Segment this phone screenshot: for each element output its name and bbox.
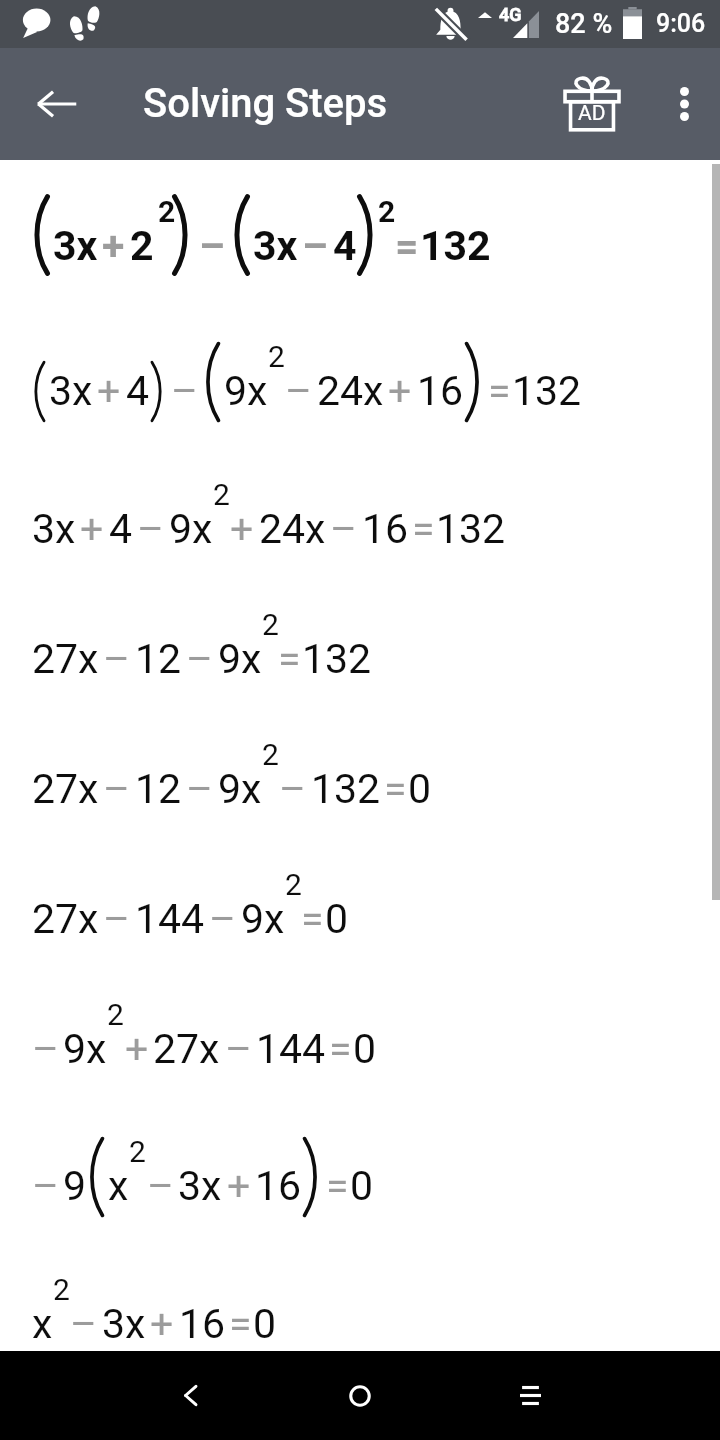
staticText: + <box>125 1025 149 1073</box>
staticText: = <box>412 505 435 553</box>
staticText: 4 <box>109 505 133 553</box>
staticText: – <box>186 635 213 683</box>
staticText: = <box>229 1300 252 1348</box>
staticText: + <box>80 505 104 553</box>
staticText: 132 <box>420 222 491 270</box>
staticText: x <box>108 1162 129 1210</box>
staticText: 16 <box>179 1300 226 1348</box>
staticText: = <box>488 367 511 415</box>
staticText: 16 <box>417 367 464 415</box>
staticText: – <box>199 222 225 270</box>
staticText: – <box>147 1162 174 1210</box>
staticText: + <box>230 505 254 553</box>
staticText: 2 <box>268 339 285 374</box>
staticText: – <box>32 1025 59 1073</box>
staticText: = <box>301 895 324 943</box>
staticText: + <box>97 367 121 415</box>
staticText: 2 <box>262 737 279 772</box>
staticText: – <box>171 367 198 415</box>
staticText: 9:06 <box>656 9 706 38</box>
staticText: 132 <box>302 635 372 683</box>
staticText: 144 <box>135 895 205 943</box>
staticText: 2 <box>378 194 396 229</box>
button[interactable]: Navigate up <box>0 48 112 160</box>
staticText: 4G <box>499 4 522 25</box>
staticText: = <box>278 635 301 683</box>
staticText: 4 <box>333 222 357 270</box>
staticText: – <box>137 505 164 553</box>
staticText: = <box>329 1025 352 1073</box>
staticText: 9x <box>241 895 285 943</box>
staticText: 144 <box>256 1025 326 1073</box>
staticText: 82 % <box>555 8 613 40</box>
staticText: 9x <box>169 505 213 553</box>
staticText: – <box>32 1162 59 1210</box>
staticText: 24x <box>259 505 326 553</box>
staticText: Solving Steps <box>143 80 388 127</box>
staticText: 3x <box>32 505 76 553</box>
staticText: 12 <box>135 765 182 813</box>
staticText: = <box>395 222 419 270</box>
staticText: – <box>186 765 213 813</box>
button[interactable]: Solving Steps <box>112 48 532 160</box>
staticText: 2 <box>262 607 279 642</box>
staticText: 0 <box>325 895 349 943</box>
staticText: AD <box>578 101 606 126</box>
staticText: – <box>103 765 130 813</box>
button[interactable]: Recent apps <box>470 1351 590 1440</box>
staticText: 9x <box>218 765 262 813</box>
staticText: 2 <box>130 222 154 270</box>
staticText: 2 <box>158 194 176 229</box>
staticText: 0 <box>408 765 432 813</box>
staticText: – <box>225 1025 252 1073</box>
staticText: 2 <box>213 477 230 512</box>
staticText: – <box>302 222 328 270</box>
staticText: – <box>279 765 306 813</box>
staticText: x <box>32 1300 53 1348</box>
staticText: – <box>70 1300 97 1348</box>
staticText: 9 <box>63 1162 87 1210</box>
staticText: – <box>103 635 130 683</box>
button[interactable]: Watch ad for reward <box>536 48 648 160</box>
staticText: – <box>209 895 236 943</box>
button[interactable]: More options <box>648 48 720 160</box>
staticText: 27x <box>153 1025 220 1073</box>
staticText: 27x <box>32 895 99 943</box>
staticText: + <box>150 1300 174 1348</box>
staticText: 132 <box>436 505 506 553</box>
staticText: + <box>388 367 412 415</box>
staticText: = <box>384 765 407 813</box>
staticText: 2 <box>53 1272 70 1307</box>
staticText: 27x <box>32 765 99 813</box>
staticText: 9x <box>224 367 268 415</box>
staticText: 132 <box>512 367 582 415</box>
staticText: = <box>326 1162 349 1210</box>
staticText: 24x <box>317 367 384 415</box>
staticText: 16 <box>362 505 409 553</box>
staticText: 132 <box>311 765 381 813</box>
staticText: 3x <box>253 222 298 270</box>
staticText: 4 <box>126 367 150 415</box>
staticText: – <box>103 895 130 943</box>
staticText: 9x <box>63 1025 107 1073</box>
staticText: + <box>102 222 125 270</box>
button[interactable]: Home <box>300 1351 420 1440</box>
staticText: 3x <box>102 1300 146 1348</box>
staticText: 2 <box>285 867 302 902</box>
staticText: 3x <box>53 222 98 270</box>
staticText: 0 <box>350 1162 374 1210</box>
staticText: 12 <box>135 635 182 683</box>
staticText: 0 <box>253 1300 277 1348</box>
staticText: 2 <box>129 1134 146 1169</box>
staticText: – <box>285 367 312 415</box>
staticText: – <box>330 505 357 553</box>
staticText: 27x <box>32 635 99 683</box>
button[interactable]: Back <box>130 1351 250 1440</box>
staticText: 3x <box>49 367 93 415</box>
staticText: 2 <box>107 997 124 1032</box>
staticText: + <box>227 1162 251 1210</box>
staticText: 3x <box>178 1162 222 1210</box>
staticText: 0 <box>353 1025 377 1073</box>
staticText: 16 <box>255 1162 302 1210</box>
staticText: 9x <box>218 635 262 683</box>
